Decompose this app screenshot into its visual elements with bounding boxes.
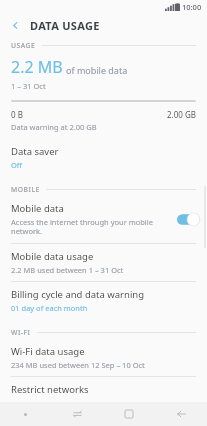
staticText: Off: [11, 160, 23, 170]
staticText: 10:00: [182, 2, 202, 12]
staticText: USAGE: [11, 41, 36, 50]
staticText: 2.00 GB: [167, 109, 196, 120]
button[interactable]: Mobile data: [0, 196, 207, 243]
staticText: 1 – 31 Oct: [11, 81, 46, 91]
button[interactable]: Mobile data toggle: [177, 213, 200, 226]
staticText: 2.2 MB used between 1 – 31 Oct: [11, 265, 124, 275]
button[interactable]: Back: [155, 402, 207, 426]
button[interactable]: Billing cycle and data warning: [0, 282, 207, 319]
button[interactable]: Home: [103, 402, 155, 426]
staticText: Access the internet through your mobile …: [11, 217, 171, 237]
staticText: 01 day of each month: [11, 303, 88, 313]
staticText: Data saver: [11, 145, 59, 158]
staticText: 234 MB used between 12 Sep – 10 Oct: [11, 360, 145, 370]
button[interactable]: Recents: [51, 402, 103, 426]
staticText: MOBILE: [11, 185, 40, 194]
staticText: Restrict networks: [11, 383, 89, 396]
staticText: WI-FI: [11, 328, 31, 337]
staticText: of mobile data: [66, 64, 128, 76]
staticText: 2.2 MB: [11, 56, 63, 78]
staticText: Billing cycle and data warning: [11, 288, 145, 301]
staticText: 0 B: [11, 109, 23, 120]
button[interactable]: Mobile data usage: [0, 244, 207, 281]
button[interactable]: Menu dot: [0, 402, 51, 426]
button[interactable]: Back: [0, 13, 30, 38]
staticText: Wi-Fi data usage: [11, 345, 85, 358]
staticText: DATA USAGE: [30, 18, 100, 33]
button[interactable]: Data saver: [0, 139, 207, 176]
button[interactable]: Wi-Fi data usage: [0, 339, 207, 376]
staticText: Mobile data: [11, 202, 64, 215]
staticText: Mobile data usage: [11, 250, 94, 263]
button[interactable]: Restrict networks: [0, 377, 207, 402]
staticText: Data warning at 2.00 GB: [11, 122, 97, 132]
